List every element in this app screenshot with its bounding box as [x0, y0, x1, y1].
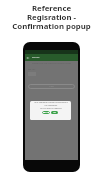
button[interactable]: No [42, 111, 50, 114]
button[interactable]: Back [25, 54, 78, 61]
staticText: Next [49, 85, 54, 88]
staticText: Please enter the reference number below [32, 62, 71, 65]
staticText: Your reference number 0000000000 is not … [34, 101, 68, 110]
other: Back [27, 57, 29, 59]
button[interactable]: Yes [51, 111, 58, 114]
staticText: Registration [32, 57, 40, 59]
button[interactable]: Next [28, 84, 75, 89]
staticText: No [45, 111, 48, 114]
staticText: Yes [53, 111, 56, 114]
staticText: Ref No. [28, 68, 36, 71]
staticText: Reference Regisration - Confirmation pop… [12, 3, 91, 32]
